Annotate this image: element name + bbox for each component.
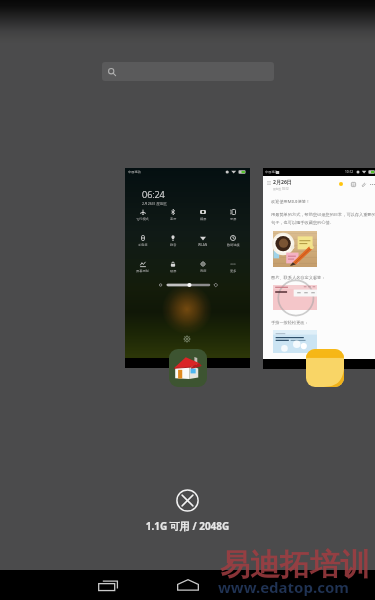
button[interactable]: Home [164, 570, 212, 600]
staticText: 欢迎使用MIUI便签！ [271, 199, 311, 205]
staticText: 屏幕录制 [136, 269, 149, 273]
staticText: 更多 [230, 269, 237, 273]
staticText: 手指一按轻松更改： [271, 320, 309, 325]
staticText: 10:12 [345, 170, 354, 174]
staticText: 录屏 [230, 217, 237, 221]
staticText: 数据连接 [227, 243, 240, 247]
button[interactable]: 手电筒 [127, 234, 158, 247]
staticText: WLAN [198, 243, 208, 247]
button[interactable]: 亮度 [188, 260, 218, 273]
staticText: 用最简单的方式，帮助您记录您的日常，可以存入重要的句子，也可以随手收藏您的心情。 [271, 212, 375, 225]
button[interactable]: Close all apps [176, 489, 199, 512]
button[interactable]: 蓝牙 [158, 208, 188, 221]
button[interactable]: 静音 [158, 234, 188, 247]
staticText: 易迪拓培训 [220, 546, 370, 584]
staticText: 静音 [170, 243, 177, 247]
staticText: 截屏 [200, 217, 207, 221]
button[interactable]: 屏幕录制 [127, 260, 158, 273]
button[interactable]: 更多 [218, 260, 248, 273]
button[interactable]: 数据连接 [218, 234, 248, 247]
staticText: 2月26日 [273, 179, 292, 186]
staticText: 06:24 [142, 188, 165, 200]
staticText: 星期五 10:12 [273, 187, 289, 191]
button[interactable]: Notes app task [263, 168, 375, 369]
button[interactable]: Notes app icon [306, 349, 344, 387]
button[interactable]: Home screen app icon [169, 349, 207, 387]
staticText: 手电筒 [138, 243, 148, 247]
staticText: 中国移动 [128, 170, 141, 174]
button[interactable]: Settings app task [125, 168, 250, 368]
button[interactable]: 飞行模式 [127, 208, 158, 221]
staticText: 蓝牙 [170, 217, 177, 221]
button[interactable]: Search [102, 62, 274, 81]
button[interactable]: 录屏 [218, 208, 248, 221]
staticText: 图片、联系人名自定义标签： [271, 275, 326, 280]
staticText: www.edatop.com [218, 577, 349, 597]
button[interactable]: WLAN [188, 234, 218, 247]
staticText: 中国移动 [265, 170, 278, 174]
button[interactable]: 锁屏 [158, 260, 188, 273]
staticText: 亮度 [200, 269, 207, 273]
button[interactable]: 截屏 [188, 208, 218, 221]
button[interactable]: Recents [84, 570, 132, 600]
staticText: 锁屏 [170, 269, 177, 273]
staticText: 飞行模式 [136, 217, 149, 221]
staticText: 2月26日 星期五 [142, 201, 168, 206]
staticText: 1.1G 可用 / 2048G [0, 519, 375, 533]
